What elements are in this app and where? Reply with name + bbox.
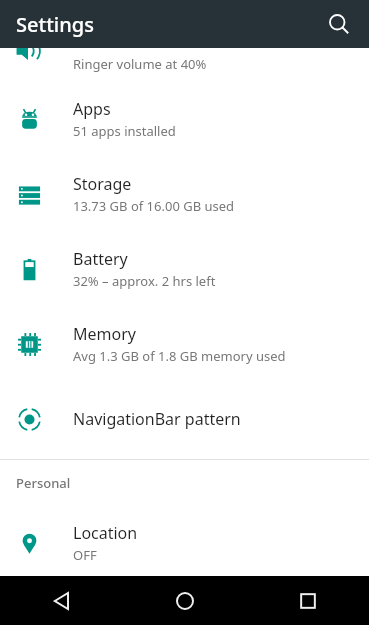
- staticText: Memory: [73, 323, 136, 345]
- button[interactable]: Recents: [246, 576, 369, 625]
- button[interactable]: Ringer volume at 40%: [0, 48, 369, 81]
- button[interactable]: Location: [0, 505, 369, 580]
- staticText: Apps: [73, 98, 111, 120]
- staticText: Storage: [73, 173, 132, 195]
- button[interactable]: Apps: [0, 81, 369, 156]
- staticText: Location: [73, 522, 138, 544]
- staticText: Ringer volume at 40%: [73, 55, 207, 73]
- button[interactable]: Back: [0, 576, 123, 625]
- staticText: 51 apps installed: [73, 122, 176, 140]
- button[interactable]: Home: [123, 576, 246, 625]
- button[interactable]: Battery: [0, 231, 369, 306]
- button[interactable]: NavigationBar pattern: [0, 381, 369, 456]
- button[interactable]: Memory: [0, 306, 369, 381]
- staticText: NavigationBar pattern: [73, 408, 241, 430]
- button[interactable]: Storage: [0, 156, 369, 231]
- staticText: Avg 1.3 GB of 1.8 GB memory used: [73, 347, 286, 365]
- staticText: Battery: [73, 248, 128, 270]
- button[interactable]: Search: [317, 2, 361, 46]
- staticText: 32% – approx. 2 hrs left: [73, 272, 216, 290]
- staticText: Settings: [16, 11, 94, 38]
- staticText: OFF: [73, 546, 97, 564]
- staticText: 13.73 GB of 16.00 GB used: [73, 197, 235, 215]
- staticText: Personal: [16, 474, 71, 492]
